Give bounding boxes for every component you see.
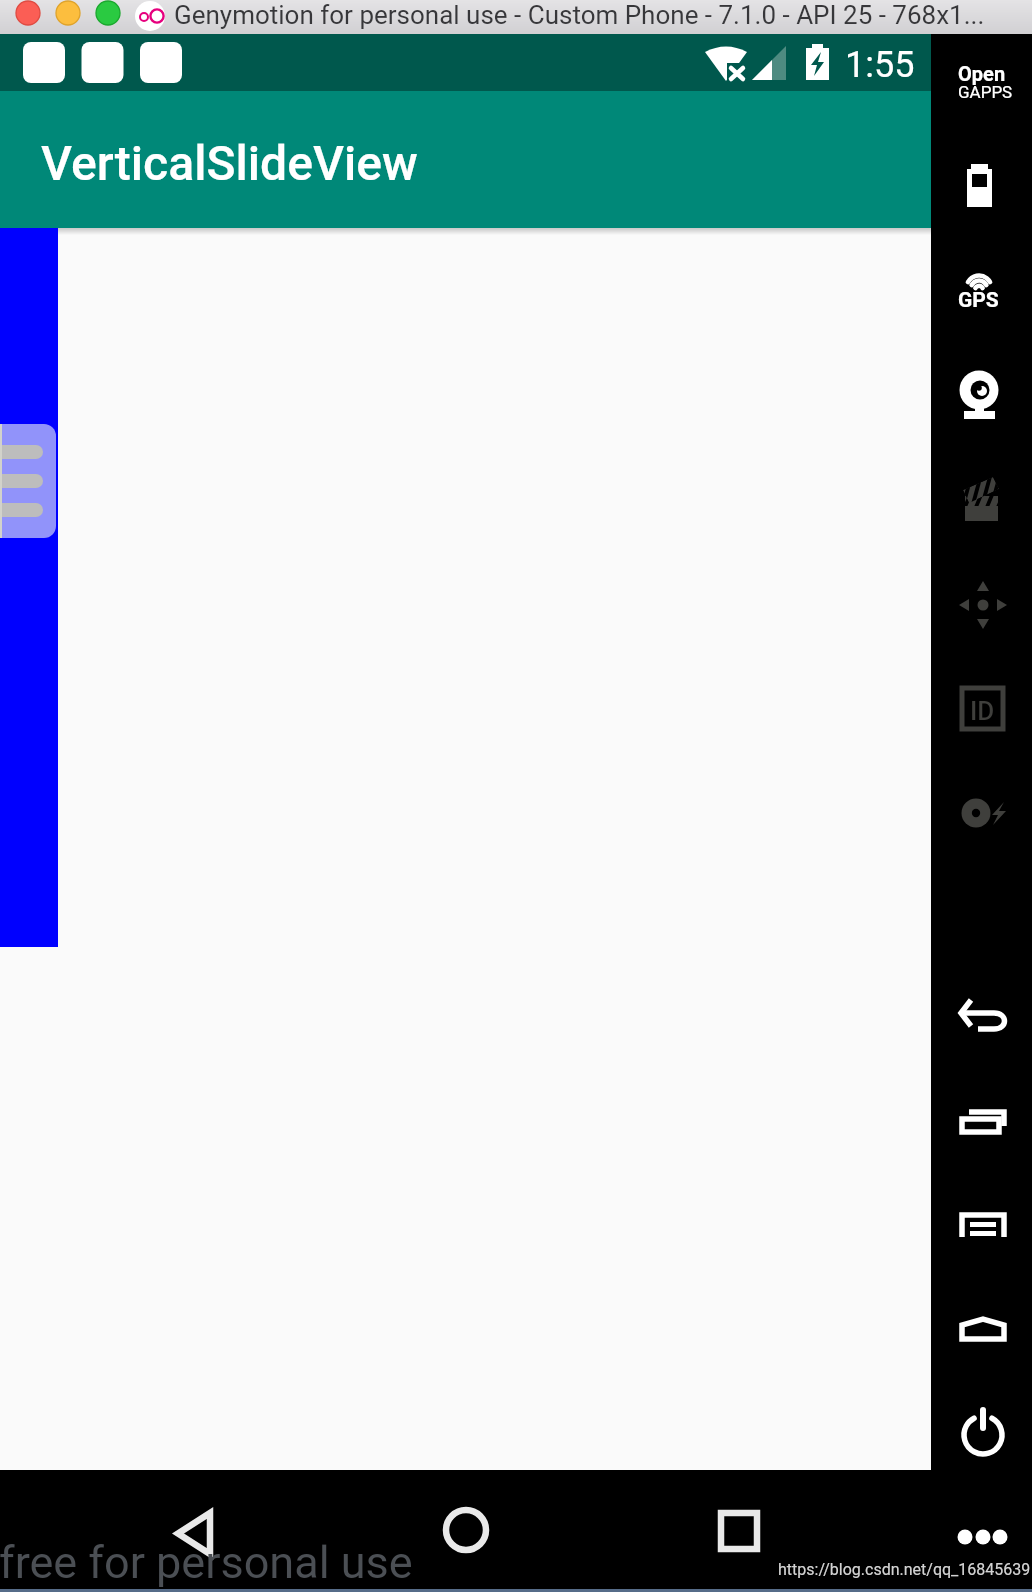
button[interactable]: Home: [426, 1490, 506, 1570]
staticText: GPS: [958, 288, 999, 313]
button[interactable]: Back: [156, 1490, 236, 1570]
button[interactable]: VerticalSlideView: [0, 91, 931, 228]
staticText: VerticalSlideView: [41, 135, 418, 191]
staticText: 1:55: [845, 44, 915, 86]
staticText: Genymotion for personal use - Custom Pho…: [174, 0, 985, 30]
staticText: GAPPS: [958, 82, 1013, 102]
staticText: https://blog.csdn.net/qq_16845639: [778, 1560, 1031, 1579]
staticText: free for personal use: [0, 1536, 413, 1589]
staticText: Open: [958, 62, 1006, 85]
button[interactable]: Recent apps: [698, 1490, 778, 1570]
staticText: ID: [970, 696, 995, 726]
button[interactable]: Slide menu: [0, 424, 56, 538]
